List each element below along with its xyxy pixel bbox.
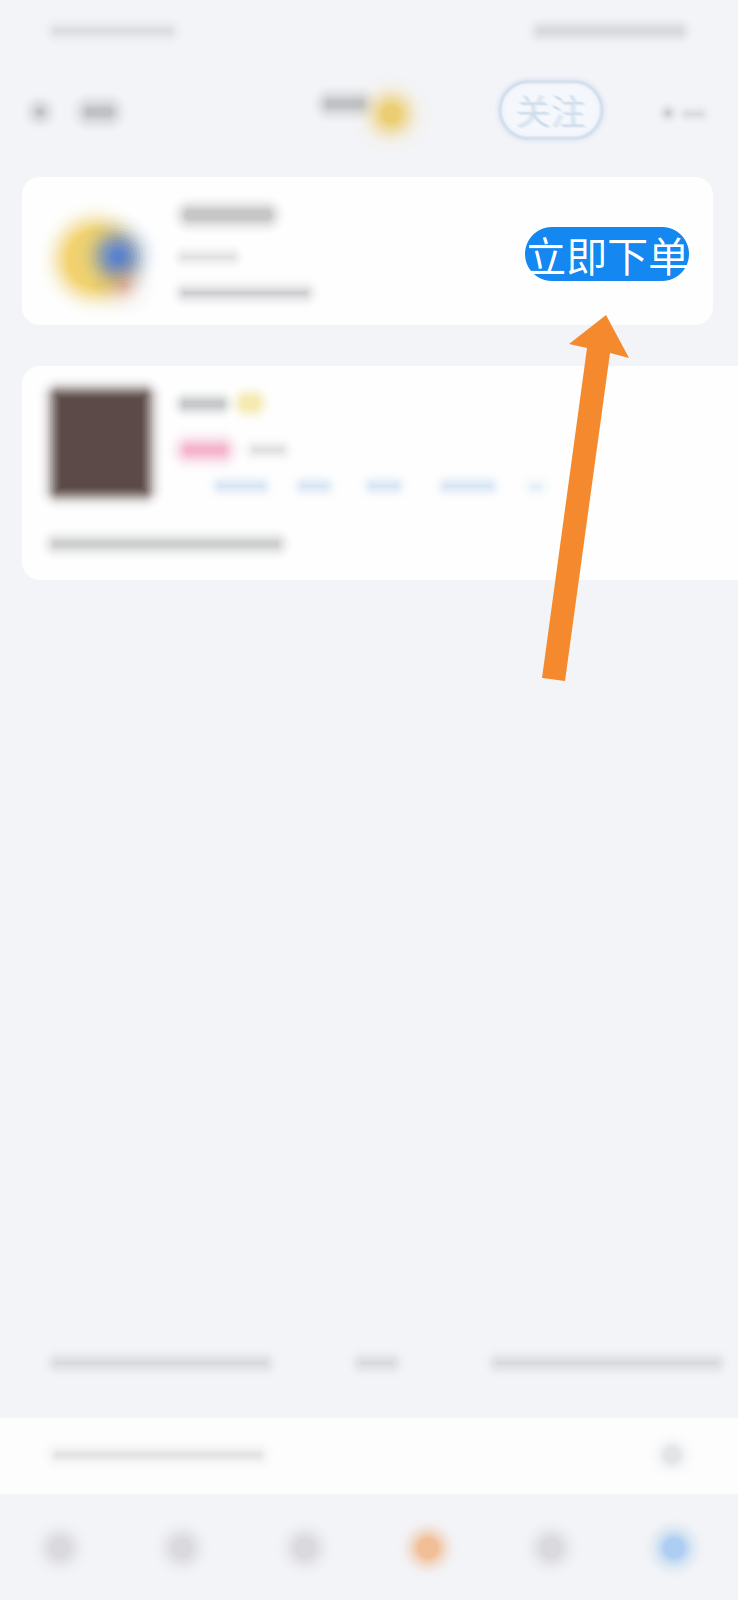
button[interactable]: Back xyxy=(0,0,738,1600)
button[interactable]: More xyxy=(492,1494,610,1600)
button[interactable]: Camera xyxy=(246,1494,364,1600)
button[interactable]: Voice input xyxy=(627,1417,717,1493)
button[interactable]: 立即下单 xyxy=(525,227,689,281)
staticText: 关注 xyxy=(518,86,588,136)
staticText: 立即下单 xyxy=(525,224,689,284)
button[interactable]: Send xyxy=(615,1494,733,1600)
button[interactable]: Gift xyxy=(369,1494,487,1600)
button[interactable]: Photos xyxy=(123,1494,241,1600)
staticText: 关注 xyxy=(514,84,584,134)
button[interactable]: Emoji xyxy=(1,1494,119,1600)
staticText: 关注 xyxy=(516,85,586,135)
button[interactable]: 关注 xyxy=(485,73,617,147)
button[interactable]: More xyxy=(632,78,736,148)
